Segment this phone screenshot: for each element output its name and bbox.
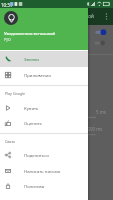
staticText: Уведомления вспышкой [39, 13, 94, 19]
button[interactable]: Поделиться [0, 147, 88, 163]
staticText: 5 ms [96, 109, 106, 115]
staticText: РЈО [4, 37, 11, 43]
button[interactable]: Приложения [0, 67, 88, 83]
staticText: Политика [24, 183, 45, 189]
button[interactable]: Купить [0, 100, 88, 116]
staticText: Поделиться [24, 152, 49, 158]
button[interactable]: Оценить [0, 115, 88, 131]
staticText: Звонки [24, 56, 40, 62]
button[interactable]: More options [101, 11, 111, 21]
staticText: Написать письмо [24, 168, 61, 174]
staticText: Оценить [24, 120, 42, 126]
staticText: Связь [5, 139, 16, 144]
button[interactable]: Написать письмо [0, 163, 88, 179]
button[interactable]: Звонки [0, 51, 88, 67]
staticText: 1000 ms [85, 126, 103, 132]
staticText: 10:31 [1, 2, 13, 8]
staticText: Купить [24, 105, 39, 111]
button[interactable]: Политика [0, 178, 88, 194]
staticText: Play Google [5, 91, 26, 96]
staticText: Уведомления вспышкой [4, 30, 56, 36]
staticText: Приложения [24, 72, 51, 78]
